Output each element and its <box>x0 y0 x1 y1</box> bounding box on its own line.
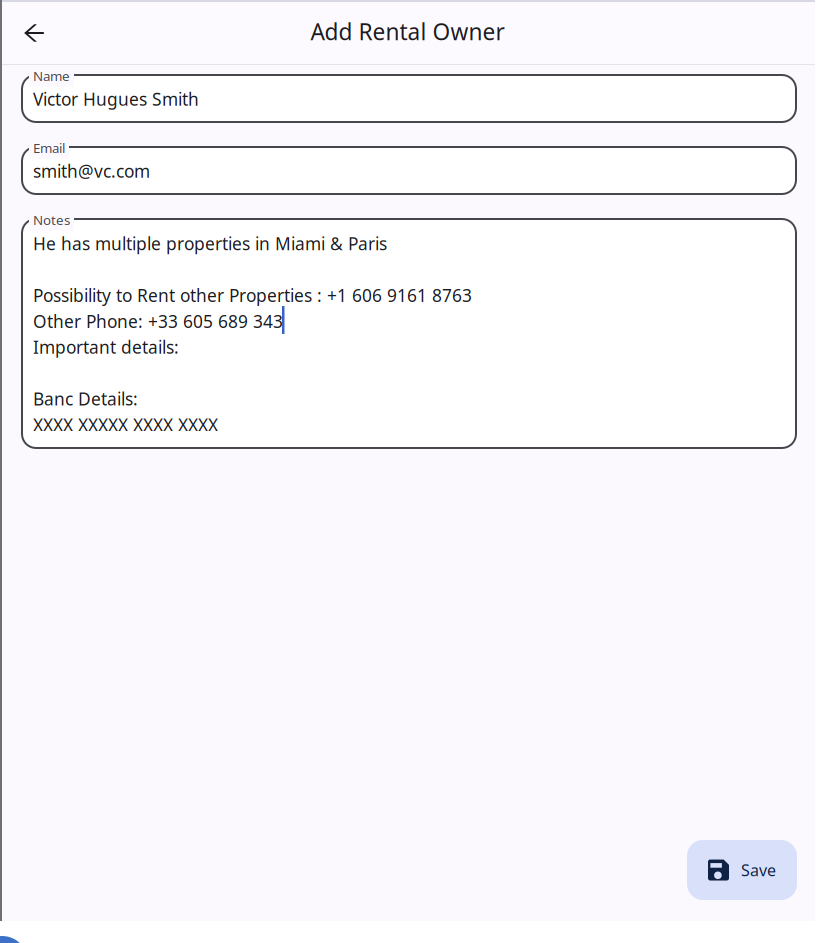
staticText: XXXX XXXXX XXXX XXXX <box>33 413 218 436</box>
staticText: Save <box>741 859 776 881</box>
staticText: Other Phone: +33 605 689 343 <box>33 310 283 333</box>
staticText: Notes <box>33 211 70 229</box>
staticText: He has multiple properties in Miami & Pa… <box>33 232 387 255</box>
staticText: Possibility to Rent other Properties : +… <box>33 284 472 307</box>
staticText: Add Rental Owner <box>310 16 504 46</box>
staticText: smith@vc.com <box>33 159 150 182</box>
staticText: Important details: <box>33 335 179 358</box>
staticText: Email <box>33 139 65 157</box>
button[interactable]: Back <box>11 9 59 57</box>
staticText: Victor Hugues Smith <box>33 87 199 110</box>
staticText: Banc Details: <box>33 387 138 410</box>
button[interactable]: Save <box>687 840 797 900</box>
staticText: Name <box>33 67 70 85</box>
